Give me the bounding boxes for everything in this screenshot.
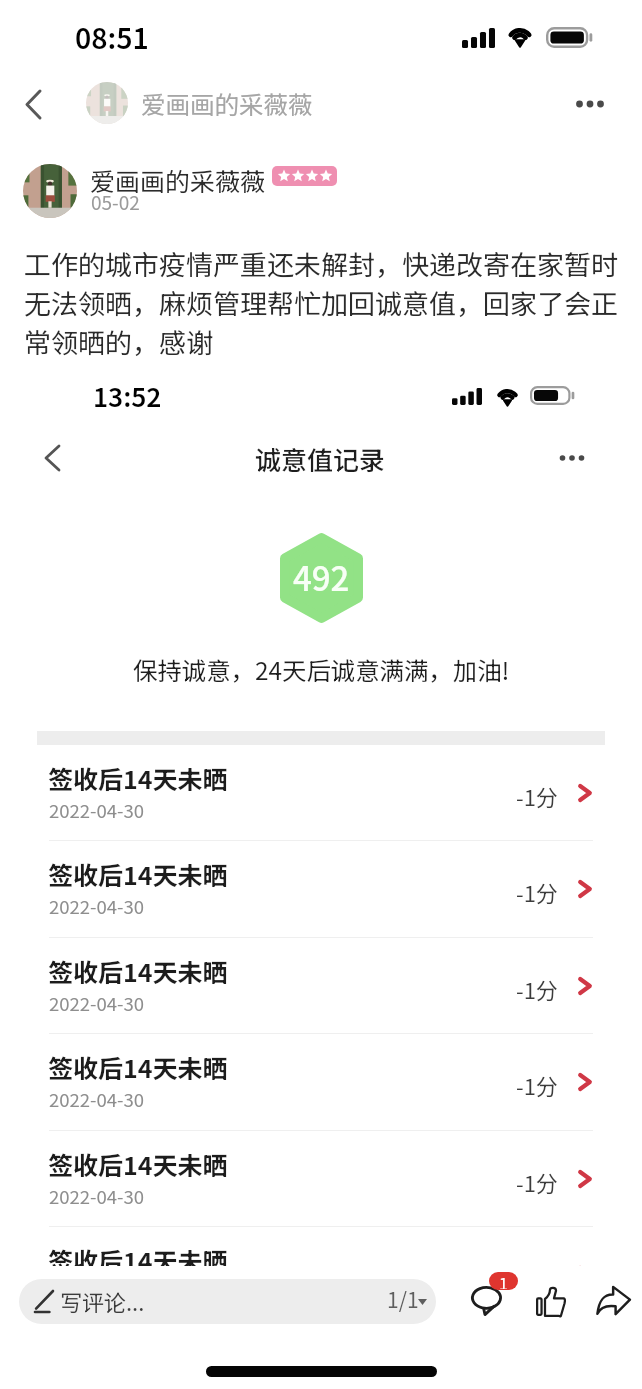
staticText: -1分 [516, 876, 558, 908]
button[interactable]: Comment [466, 1270, 524, 1320]
staticText: 2022-04-30 [49, 797, 144, 824]
button[interactable]: 签收后14天未晒 [0, 1034, 642, 1130]
staticText: 签收后14天未晒 [48, 953, 228, 989]
button[interactable]: Back [10, 81, 56, 127]
staticText: 1/1 [387, 1284, 419, 1314]
button[interactable]: 签收后14天未晒 [0, 1131, 642, 1227]
button[interactable]: 爱画画的采薇薇 [86, 82, 313, 124]
button[interactable]: 签收后14天未晒 [0, 745, 642, 841]
staticText: -1分 [516, 780, 558, 812]
button[interactable]: More options [550, 436, 594, 480]
button[interactable]: More options [568, 82, 612, 126]
button[interactable]: Like [534, 1285, 567, 1318]
staticText: -1分 [516, 1166, 558, 1198]
button[interactable]: 签收后14天未晒 [0, 938, 642, 1034]
staticText: 签收后14天未晒 [48, 1146, 228, 1182]
staticText: -1分 [516, 973, 558, 1005]
staticText: -1分 [516, 1262, 558, 1294]
staticText: 492 [293, 553, 350, 601]
button[interactable]: 写评论... [19, 1279, 436, 1324]
staticText: 签收后14天未晒 [48, 760, 228, 796]
staticText: 签收后14天未晒 [48, 1049, 228, 1085]
staticText: 诚意值记录 [255, 440, 386, 478]
button[interactable]: Back [30, 436, 74, 480]
staticText: 保持诚意，24天后诚意满满，加油! [133, 652, 510, 687]
staticText: 2022-04-30 [49, 1279, 144, 1306]
staticText: 08:51 [75, 17, 149, 58]
staticText: 13:52 [93, 377, 162, 415]
staticText: 1 [499, 1272, 508, 1289]
button[interactable]: 签收后14天未晒 [0, 841, 642, 937]
staticText: 爱画画的采薇薇 [90, 162, 266, 198]
staticText: 写评论... [60, 1285, 145, 1317]
staticText: 2022-04-30 [49, 1183, 144, 1210]
button[interactable]: 签收后14天未晒 [0, 1227, 642, 1323]
staticText: 05-02 [91, 188, 140, 216]
staticText: 工作的城市疫情严重还未解封，快递改寄在家暂时无法领晒，麻烦管理帮忙加回诚意值，回… [24, 244, 620, 361]
staticText: 2022-04-30 [49, 893, 144, 920]
staticText: 签收后14天未晒 [48, 856, 228, 892]
staticText: 2022-04-30 [49, 1086, 144, 1113]
staticText: -1分 [516, 1069, 558, 1101]
button[interactable]: Share [592, 1282, 634, 1318]
staticText: 2022-04-30 [49, 990, 144, 1017]
staticText: 签收后14天未晒 [48, 1242, 228, 1278]
staticText: 爱画画的采薇薇 [141, 86, 313, 121]
